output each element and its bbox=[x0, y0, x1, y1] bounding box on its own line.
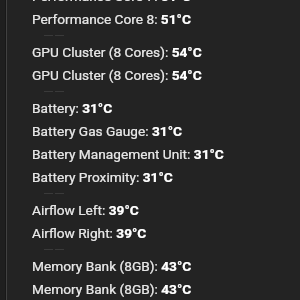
button[interactable]: GPU Cluster (8 Cores): 54°C bbox=[32, 63, 300, 86]
staticText: GPU Cluster (8 Cores): 54°C bbox=[32, 67, 202, 83]
button[interactable]: Battery Management Unit: 31°C bbox=[32, 142, 300, 165]
staticText: Battery Gas Gauge: 31°C bbox=[32, 123, 183, 139]
staticText: Memory Bank (8GB): 43°C bbox=[32, 281, 192, 297]
button[interactable]: Performance Core 8: 51°C bbox=[32, 7, 300, 30]
staticText: Performance Core 7: 51°C bbox=[32, 0, 191, 4]
button[interactable]: Airflow Right: 39°C bbox=[32, 221, 300, 244]
staticText: Airflow Right: 39°C bbox=[32, 225, 147, 241]
button[interactable]: Battery Gas Gauge: 31°C bbox=[32, 119, 300, 142]
staticText: Performance Core 8: 51°C bbox=[32, 11, 191, 27]
button[interactable]: Airflow Left: 39°C bbox=[32, 198, 300, 221]
staticText: Airflow Left: 39°C bbox=[32, 202, 139, 218]
button[interactable]: Battery Proximity: 31°C bbox=[32, 165, 300, 188]
button[interactable]: Memory Bank (8GB): 43°C bbox=[32, 277, 300, 300]
staticText: Memory Bank (8GB): 43°C bbox=[32, 258, 192, 274]
staticText: Battery Management Unit: 31°C bbox=[32, 146, 224, 162]
button[interactable]: Performance Core 7: 51°C bbox=[32, 0, 300, 7]
button[interactable]: GPU Cluster (8 Cores): 54°C bbox=[32, 40, 300, 63]
staticText: Battery Proximity: 31°C bbox=[32, 169, 173, 185]
staticText: Battery: 31°C bbox=[32, 100, 113, 116]
staticText: GPU Cluster (8 Cores): 54°C bbox=[32, 44, 202, 60]
button[interactable]: Memory Bank (8GB): 43°C bbox=[32, 254, 300, 277]
button[interactable]: Battery: 31°C bbox=[32, 96, 300, 119]
